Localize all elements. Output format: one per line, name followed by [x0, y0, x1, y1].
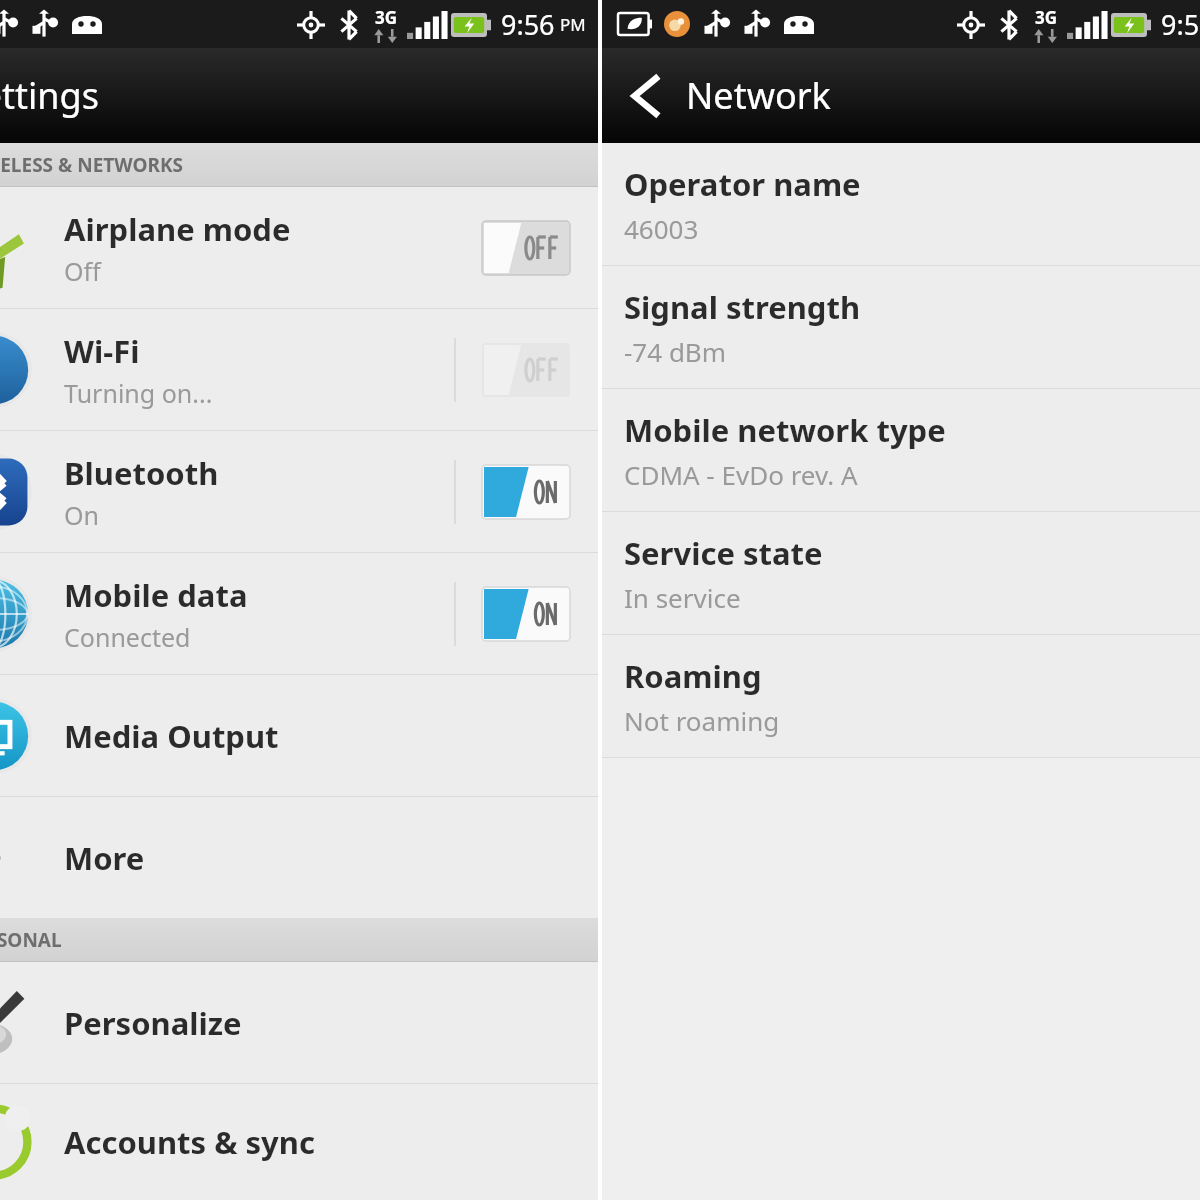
staticText: 46003 — [624, 211, 699, 246]
button[interactable]: Mobile data toggle — [482, 587, 570, 641]
staticText: 9:5 — [1161, 6, 1200, 43]
staticText: Mobile network type — [624, 409, 946, 451]
button[interactable]: Operator name — [602, 143, 1200, 265]
staticText: Turning on... — [64, 376, 213, 410]
button[interactable]: Bluetooth — [0, 431, 598, 552]
button[interactable]: Signal strength — [602, 266, 1200, 388]
staticText: Personalize — [64, 1002, 242, 1044]
staticText: 3G — [1035, 6, 1058, 29]
staticText: Accounts & sync — [64, 1121, 315, 1163]
button[interactable]: Airplane mode toggle — [482, 221, 570, 275]
staticText: Airplane mode — [64, 208, 291, 250]
button[interactable]: Personalize — [0, 962, 598, 1083]
button[interactable]: Mobile data — [0, 553, 598, 674]
button[interactable]: Wi-Fi — [0, 309, 598, 430]
staticText: WIRELESS & NETWORKS — [0, 152, 184, 178]
staticText: More — [64, 837, 145, 879]
staticText: Roaming — [624, 655, 762, 697]
staticText: Media Output — [64, 715, 279, 757]
staticText: Network — [686, 71, 831, 120]
staticText: Signal strength — [624, 286, 861, 328]
staticText: Connected — [64, 620, 191, 654]
button[interactable]: Back — [602, 48, 831, 143]
staticText: Off — [64, 254, 101, 288]
staticText: Settings — [0, 71, 99, 120]
button[interactable]: Service state — [602, 512, 1200, 634]
staticText: Not roaming — [624, 703, 780, 738]
button[interactable]: Airplane mode — [0, 187, 598, 308]
staticText: -74 dBm — [624, 334, 727, 369]
button[interactable]: Bluetooth toggle — [482, 465, 570, 519]
staticText: PERSONAL — [0, 927, 62, 953]
button[interactable]: Roaming — [602, 635, 1200, 757]
button[interactable]: Media Output — [0, 675, 598, 796]
staticText: 3G — [375, 6, 398, 29]
staticText: Operator name — [624, 163, 861, 205]
other: Back — [632, 76, 658, 116]
staticText: Mobile data — [64, 574, 248, 616]
staticText: 9:56 — [501, 6, 555, 43]
button[interactable]: Wi-Fi toggle — [482, 343, 570, 397]
button[interactable]: Mobile network type — [602, 389, 1200, 511]
button[interactable]: More — [0, 797, 598, 918]
button[interactable]: Accounts & sync — [0, 1084, 598, 1200]
staticText: Service state — [624, 532, 823, 574]
staticText: PM — [560, 13, 586, 36]
staticText: In service — [624, 580, 741, 615]
staticText: On — [64, 498, 99, 532]
staticText: Bluetooth — [64, 452, 219, 494]
staticText: Wi-Fi — [64, 330, 140, 372]
staticText: CDMA - EvDo rev. A — [624, 457, 858, 492]
